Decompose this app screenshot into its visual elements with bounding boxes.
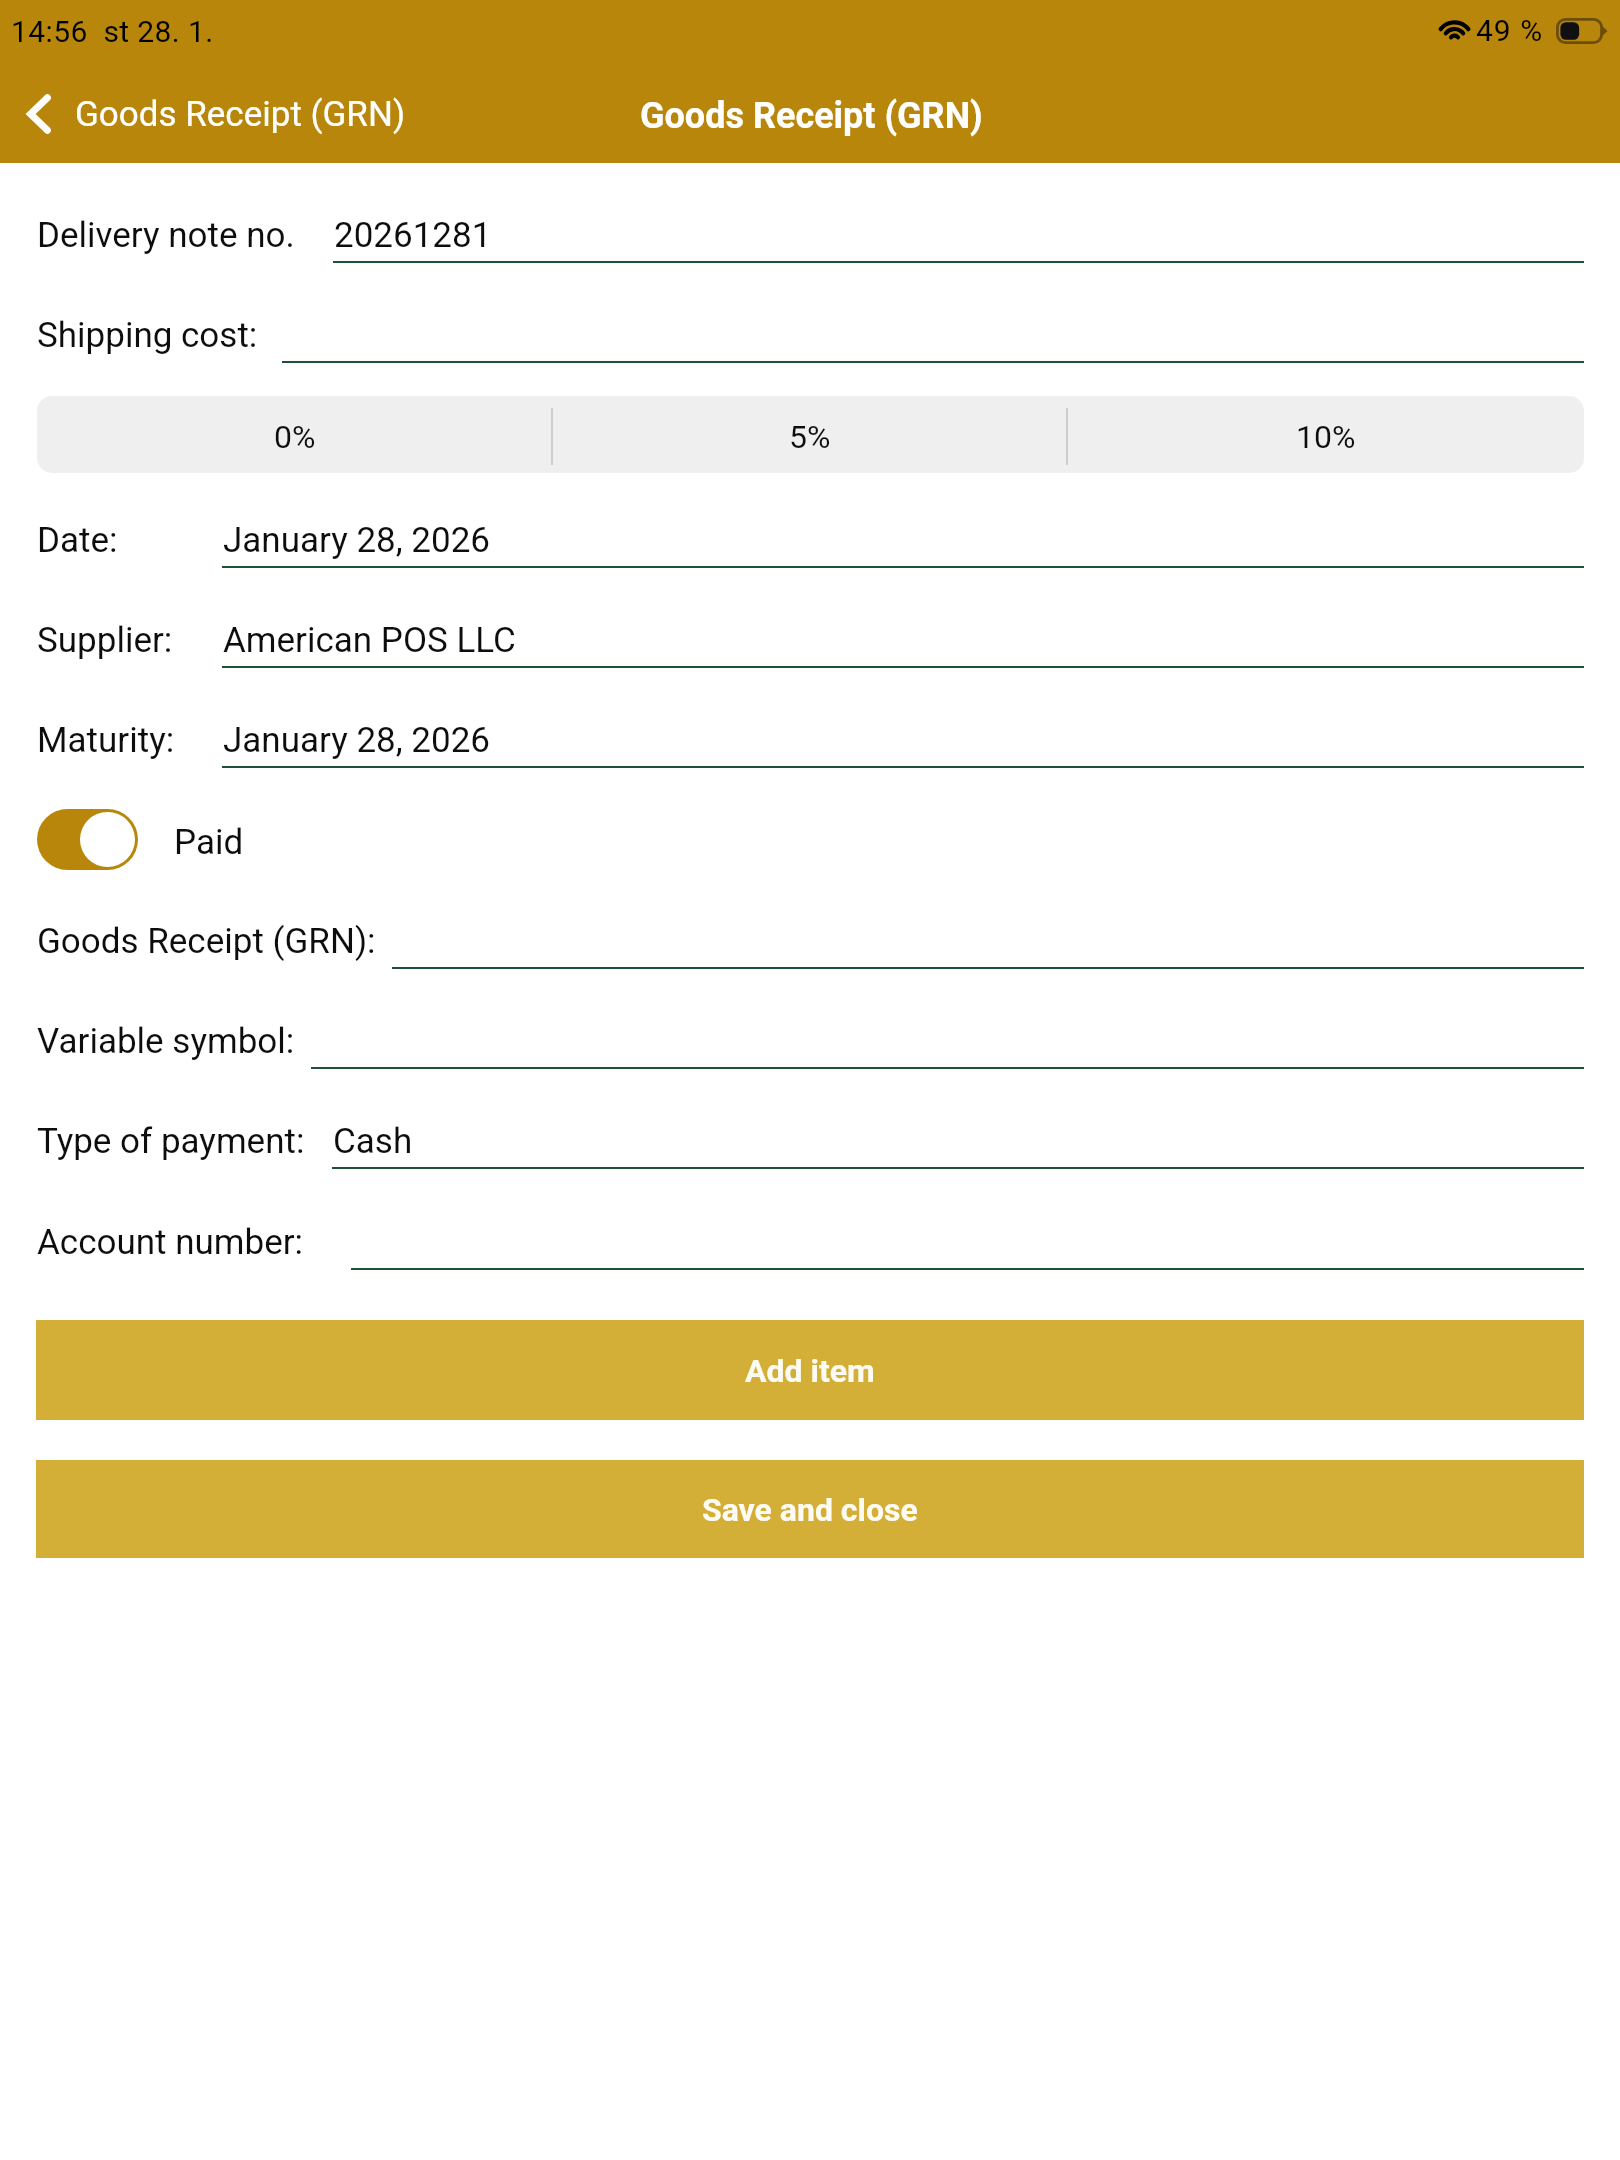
staticText: Add item	[745, 1352, 875, 1390]
staticText: Paid	[174, 822, 244, 863]
staticText: 20261281	[334, 215, 492, 256]
button[interactable]: Back	[14, 80, 418, 148]
staticText: Maturity:	[37, 720, 175, 761]
staticText: Goods Receipt (GRN)	[640, 95, 983, 137]
staticText: Cash	[333, 1121, 413, 1162]
staticText: Date:	[37, 520, 118, 561]
button[interactable]: 10%	[1068, 396, 1584, 473]
staticText: 49 %	[1476, 13, 1544, 48]
staticText: 14:56 st 28. 1.	[11, 14, 214, 49]
button[interactable]: Shipping cost:	[0, 300, 1620, 382]
staticText: Variable symbol:	[37, 1021, 295, 1062]
button[interactable]: Maturity:	[0, 705, 1620, 787]
button[interactable]: 5%	[552, 396, 1068, 473]
button[interactable]: Paid	[37, 809, 244, 870]
staticText: January 28, 2026	[223, 520, 491, 561]
button[interactable]: Variable symbol:	[0, 1006, 1620, 1088]
staticText: Goods Receipt (GRN):	[37, 921, 376, 962]
button[interactable]: 0%	[37, 396, 552, 473]
staticText: 0%	[274, 418, 316, 456]
staticText: Save and close	[702, 1491, 918, 1529]
button[interactable]: Save and close	[36, 1460, 1584, 1558]
button[interactable]: Account number:	[0, 1207, 1620, 1289]
staticText: 10%	[1296, 418, 1356, 456]
staticText: Type of payment:	[37, 1121, 305, 1162]
button[interactable]: Type of payment:	[0, 1106, 1620, 1188]
staticText: 5%	[789, 418, 831, 456]
button[interactable]: Date:	[0, 505, 1620, 587]
staticText: American POS LLC	[223, 620, 516, 661]
staticText: Goods Receipt (GRN)	[75, 94, 406, 135]
staticText: Account number:	[37, 1222, 304, 1263]
staticText: Supplier:	[37, 620, 173, 661]
button[interactable]: Delivery note no.	[0, 200, 1620, 282]
staticText: Delivery note no.	[37, 215, 295, 256]
button[interactable]: Goods Receipt (GRN):	[0, 906, 1620, 988]
button[interactable]: Supplier:	[0, 605, 1620, 687]
other: Back	[24, 92, 54, 136]
staticText: January 28, 2026	[223, 720, 491, 761]
button[interactable]: Add item	[36, 1320, 1584, 1420]
staticText: Shipping cost:	[37, 315, 258, 356]
